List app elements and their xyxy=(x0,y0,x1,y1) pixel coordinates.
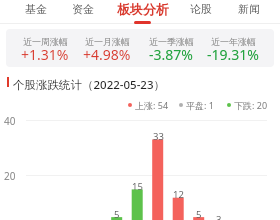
staticText: -3.87% xyxy=(149,45,193,64)
staticText: 20 xyxy=(4,169,16,183)
button[interactable]: 平盘: 1 xyxy=(179,99,214,111)
button[interactable]: 上涨: 54 xyxy=(128,99,169,111)
button[interactable]: 近一季涨幅 xyxy=(135,36,207,64)
button[interactable]: 新闻 xyxy=(233,0,265,18)
button[interactable]: 资金 xyxy=(67,0,99,18)
staticText: +4.98% xyxy=(83,45,131,64)
staticText: 5 xyxy=(114,208,120,220)
staticText: 近一年涨幅 xyxy=(211,36,256,47)
staticText: 基金 xyxy=(25,2,47,16)
staticText: 12 xyxy=(173,188,184,201)
staticText: 5 xyxy=(196,208,202,220)
staticText: 3 xyxy=(216,213,222,220)
button[interactable]: 下跌: 20 xyxy=(227,99,268,111)
staticText: 平盘: 1 xyxy=(186,99,214,111)
staticText: 个股涨跌统计（2022-05-23） xyxy=(13,77,166,93)
staticText: 论股 xyxy=(190,2,212,16)
staticText: 15 xyxy=(132,180,143,193)
button[interactable]: 论股 xyxy=(185,0,217,18)
staticText: +1.31% xyxy=(21,45,69,64)
button[interactable]: 板块分析 xyxy=(113,0,173,18)
staticText: 资金 xyxy=(72,2,94,16)
staticText: 40 xyxy=(4,114,16,128)
button[interactable]: 近一周涨幅 xyxy=(9,36,81,64)
staticText: -19.31% xyxy=(207,45,259,64)
staticText: 近一季涨幅 xyxy=(149,36,194,47)
staticText: 上涨: 54 xyxy=(135,99,169,111)
staticText: 近一月涨幅 xyxy=(85,36,130,47)
staticText: 33 xyxy=(153,130,164,143)
button[interactable]: 基金 xyxy=(20,0,52,18)
staticText: 板块分析 xyxy=(117,1,169,17)
button[interactable]: 近一年涨幅 xyxy=(197,36,269,64)
staticText: 下跌: 20 xyxy=(234,99,268,111)
staticText: 近一周涨幅 xyxy=(23,36,68,47)
staticText: 新闻 xyxy=(238,2,260,16)
button[interactable]: 近一月涨幅 xyxy=(71,36,143,64)
